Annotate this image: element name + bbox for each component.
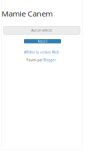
staticText: Afficher la version Web	[24, 50, 59, 54]
staticText: Aucun article	[31, 28, 52, 32]
button[interactable]: Afficher la version Web	[24, 50, 59, 54]
button[interactable]: Blogger.	[43, 58, 56, 62]
staticText: Blogger.	[43, 58, 56, 62]
staticText: Fourni par	[26, 58, 42, 62]
button[interactable]: Accueil	[24, 39, 61, 43]
staticText: Accueil	[37, 39, 47, 43]
staticText: Mamie Canem	[2, 8, 53, 19]
